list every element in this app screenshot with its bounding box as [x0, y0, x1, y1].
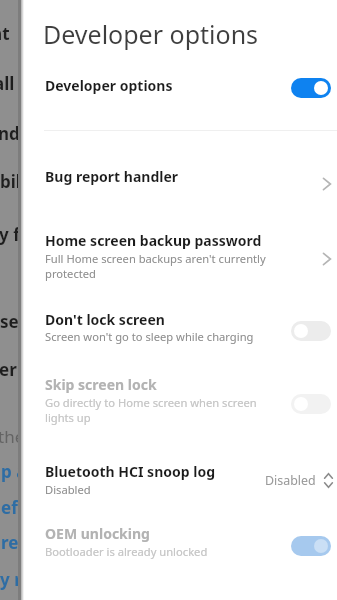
staticText: Developer options	[45, 76, 173, 95]
staticText: p a	[1, 460, 21, 483]
staticText: Go directly to Home screen when screen l…	[45, 395, 257, 425]
staticText: Bug report handler	[45, 167, 179, 186]
staticText: OEM unlocking	[45, 524, 150, 543]
staticText: bili	[0, 170, 21, 193]
staticText: er	[0, 358, 17, 381]
staticText: y re	[0, 568, 21, 591]
staticText: Home screen backup password	[45, 231, 262, 250]
staticText: Disabled	[265, 472, 316, 489]
button[interactable]: Skip screen lock	[21, 368, 337, 434]
staticText: Bootloader is already unlocked	[45, 544, 208, 559]
staticText: Bluetooth HCI snoop log	[45, 462, 216, 481]
button[interactable]: Developer options	[21, 62, 337, 112]
staticText: eff	[1, 496, 21, 519]
staticText: se	[0, 310, 19, 333]
button[interactable]: OEM unlocking	[21, 518, 337, 568]
staticText: Screen won't go to sleep while charging	[45, 329, 254, 344]
staticText: Developer options	[43, 17, 259, 51]
staticText: Full Home screen backups aren't currentl…	[45, 251, 266, 281]
button[interactable]: Don't lock screen	[21, 302, 337, 356]
staticText: ree	[1, 531, 21, 554]
button[interactable]: Bluetooth HCI snoop log	[21, 455, 337, 505]
button[interactable]: Bug report handler	[21, 156, 337, 200]
staticText: nde	[0, 122, 19, 145]
staticText: at	[0, 22, 10, 45]
button[interactable]: Home screen backup password	[21, 222, 337, 292]
staticText: y fo	[0, 223, 20, 246]
staticText: Don't lock screen	[45, 310, 165, 329]
staticText: Skip screen lock	[45, 375, 157, 394]
staticText: the	[0, 425, 19, 448]
staticText: Disabled	[45, 482, 91, 497]
staticText: all	[0, 72, 15, 95]
